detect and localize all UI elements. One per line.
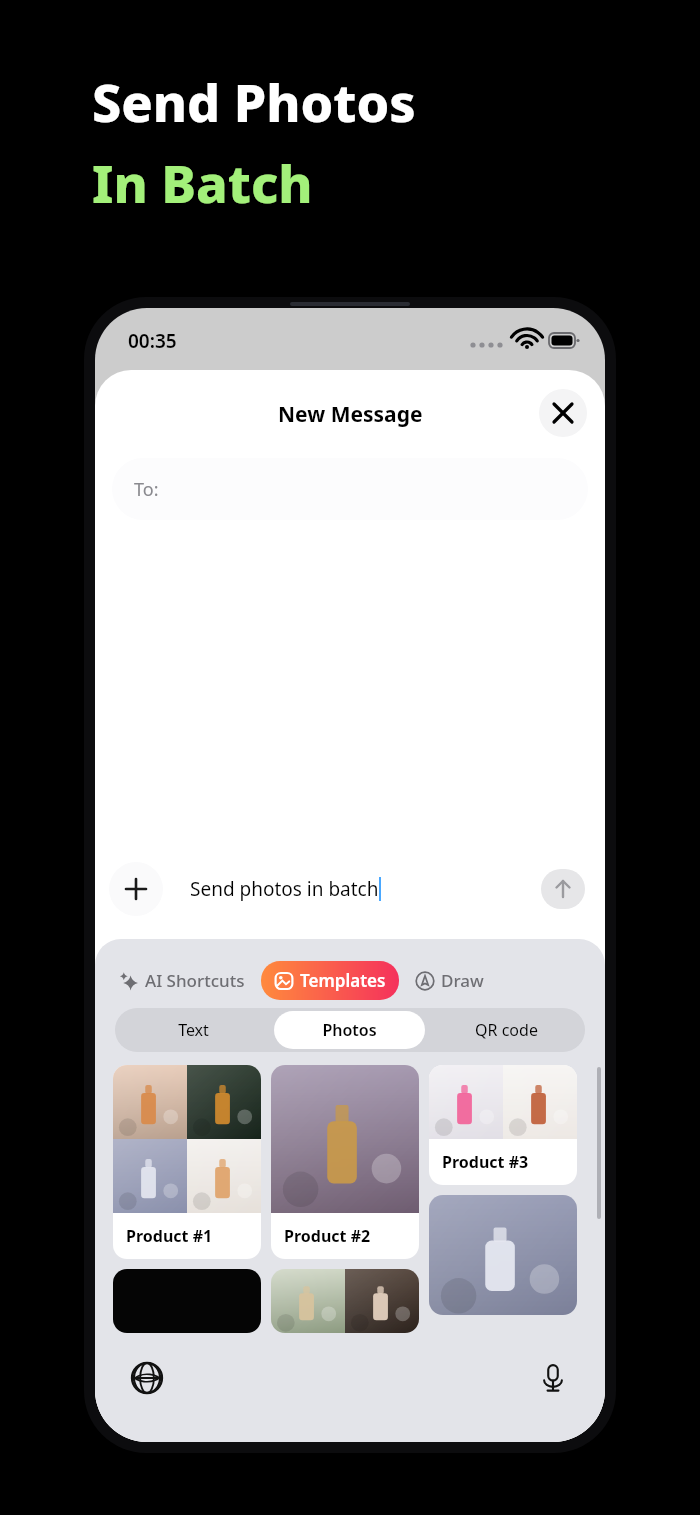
button[interactable]: Photos bbox=[274, 1011, 425, 1049]
button[interactable]: Close bbox=[539, 389, 587, 437]
staticText: AI Shortcuts bbox=[145, 969, 245, 992]
button[interactable] bbox=[429, 1195, 577, 1315]
staticText: Send Photos bbox=[92, 66, 416, 137]
staticText: Draw bbox=[441, 969, 484, 992]
staticText: Text bbox=[178, 1019, 209, 1041]
button[interactable]: Product #2 bbox=[271, 1065, 419, 1259]
staticText: Photos bbox=[322, 1019, 377, 1041]
button[interactable]: Change keyboard language bbox=[123, 1354, 171, 1402]
staticText: Product #1 bbox=[126, 1225, 213, 1247]
staticText: Templates bbox=[300, 969, 386, 992]
button[interactable]: AI Shortcuts bbox=[117, 965, 247, 996]
staticText: 00:35 bbox=[128, 328, 177, 354]
button[interactable]: To: bbox=[112, 458, 588, 520]
staticText: Product #3 bbox=[442, 1151, 529, 1173]
button[interactable]: QR code bbox=[431, 1011, 582, 1049]
button[interactable]: Send photos in batch bbox=[171, 861, 591, 917]
staticText: Send photos in batch bbox=[190, 876, 379, 902]
button[interactable]: Templates bbox=[261, 961, 399, 1000]
staticText: Product #2 bbox=[284, 1225, 371, 1247]
staticText: In Batch bbox=[92, 147, 313, 218]
button[interactable]: Add attachment bbox=[109, 862, 163, 916]
staticText: New Message bbox=[278, 400, 423, 429]
staticText: QR code bbox=[475, 1019, 538, 1041]
button[interactable]: Product #3 bbox=[429, 1065, 577, 1185]
button[interactable] bbox=[113, 1269, 261, 1333]
staticText: To: bbox=[134, 477, 159, 502]
button[interactable]: Dictate bbox=[529, 1354, 577, 1402]
button[interactable]: Draw bbox=[413, 965, 486, 996]
button[interactable] bbox=[271, 1269, 419, 1333]
button[interactable]: Text bbox=[118, 1011, 268, 1049]
button[interactable]: Product #1 bbox=[113, 1065, 261, 1259]
button[interactable]: Send bbox=[541, 869, 585, 909]
